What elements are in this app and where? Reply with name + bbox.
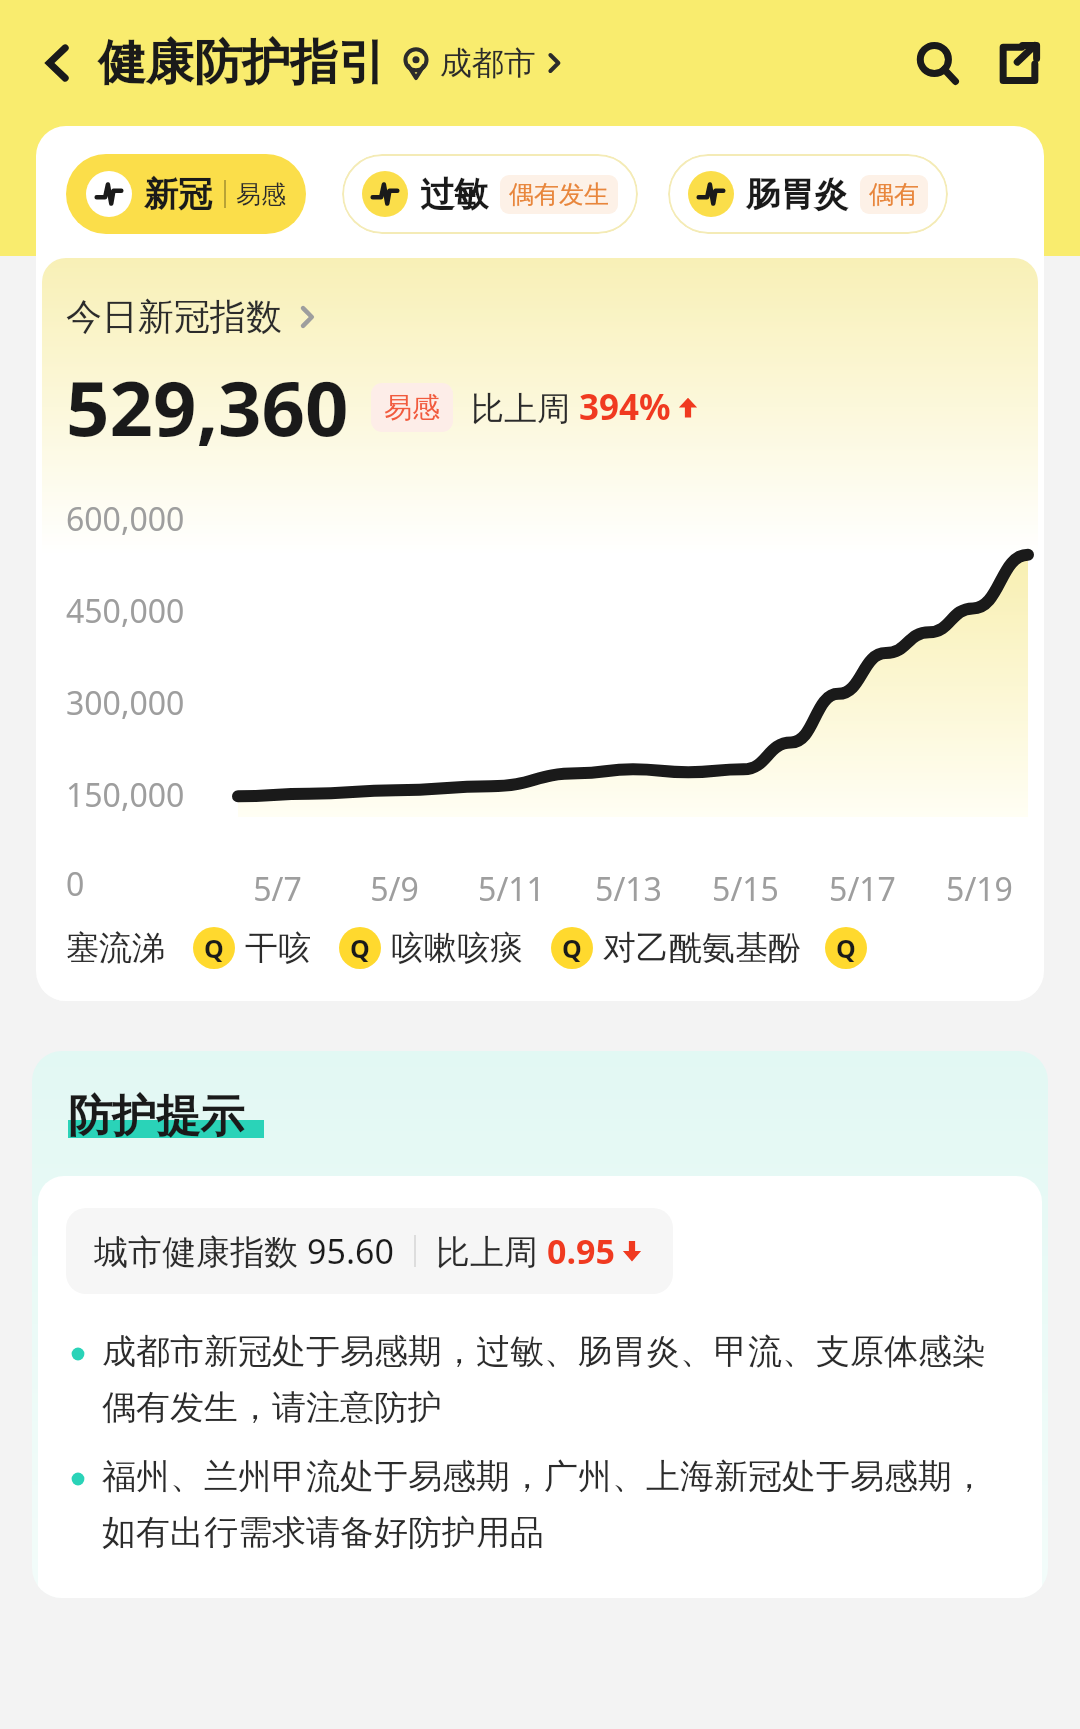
button[interactable]: Q [339, 927, 523, 969]
staticText: 干咳 [245, 927, 311, 969]
button[interactable]: Q [551, 927, 801, 969]
button[interactable]: 塞流涕 [66, 927, 165, 969]
staticText: 福州、兰州甲流处于易感期，广州、上海新冠处于易感期，如有出行需求请备好防护用品 [102, 1455, 1002, 1554]
staticText: 成都市 [440, 43, 536, 83]
staticText: 0.95 [547, 1228, 615, 1274]
staticText: 0 [66, 862, 85, 906]
button[interactable]: 过敏 [342, 154, 638, 234]
staticText: 城市健康指数 [94, 1228, 307, 1274]
button[interactable]: 肠胃炎 [668, 154, 948, 234]
staticText: 肠胃炎 [746, 173, 848, 216]
button[interactable]: 今日新冠指数 [66, 294, 318, 339]
staticText: 95.60 [307, 1228, 394, 1274]
staticText: 易感 [384, 390, 440, 425]
button[interactable]: 成都市 [400, 43, 564, 83]
staticText: 150,000 [66, 773, 185, 817]
button[interactable]: 新冠 [66, 154, 306, 234]
staticText: Q [350, 931, 370, 965]
staticText: 防护提示 [68, 1089, 244, 1144]
staticText: 5/15 [712, 867, 779, 911]
staticText: 5/11 [478, 867, 545, 911]
button[interactable]: More keywords [825, 927, 867, 969]
button[interactable]: Back [30, 35, 86, 91]
staticText: 咳嗽咳痰 [391, 927, 523, 969]
staticText: 比上周 [471, 385, 579, 430]
staticText: 比上周 [436, 1228, 547, 1274]
staticText: 394% [579, 383, 671, 431]
staticText: 今日新冠指数 [66, 294, 282, 339]
staticText: 300,000 [66, 681, 185, 725]
button[interactable]: Q [193, 927, 311, 969]
staticText: 450,000 [66, 589, 185, 633]
staticText: 易感 [236, 179, 286, 210]
button[interactable]: 城市健康指数 [66, 1208, 673, 1294]
staticText: 5/19 [946, 867, 1013, 911]
staticText: 成都市新冠处于易感期，过敏、肠胃炎、甲流、支原体感染偶有发生，请注意防护 [102, 1330, 1002, 1429]
staticText: 5/7 [253, 867, 302, 911]
staticText: 5/9 [370, 867, 419, 911]
staticText: Q [836, 931, 856, 965]
staticText: 过敏 [420, 173, 488, 216]
button[interactable]: Share [988, 32, 1050, 94]
staticText: 偶有 [869, 179, 919, 210]
staticText: 对乙酰氨基酚 [603, 927, 801, 969]
staticText: 新冠 [144, 173, 212, 216]
staticText: 600,000 [66, 497, 185, 541]
staticText: 塞流涕 [66, 927, 165, 969]
staticText: 偶有发生 [509, 179, 609, 210]
staticText: Q [562, 931, 582, 965]
staticText: 健康防护指引 [98, 33, 386, 93]
staticText: 529,360 [66, 355, 349, 459]
staticText: Q [204, 931, 224, 965]
staticText: 5/17 [829, 867, 896, 911]
button[interactable]: Search [906, 32, 968, 94]
staticText: 5/13 [595, 867, 662, 911]
